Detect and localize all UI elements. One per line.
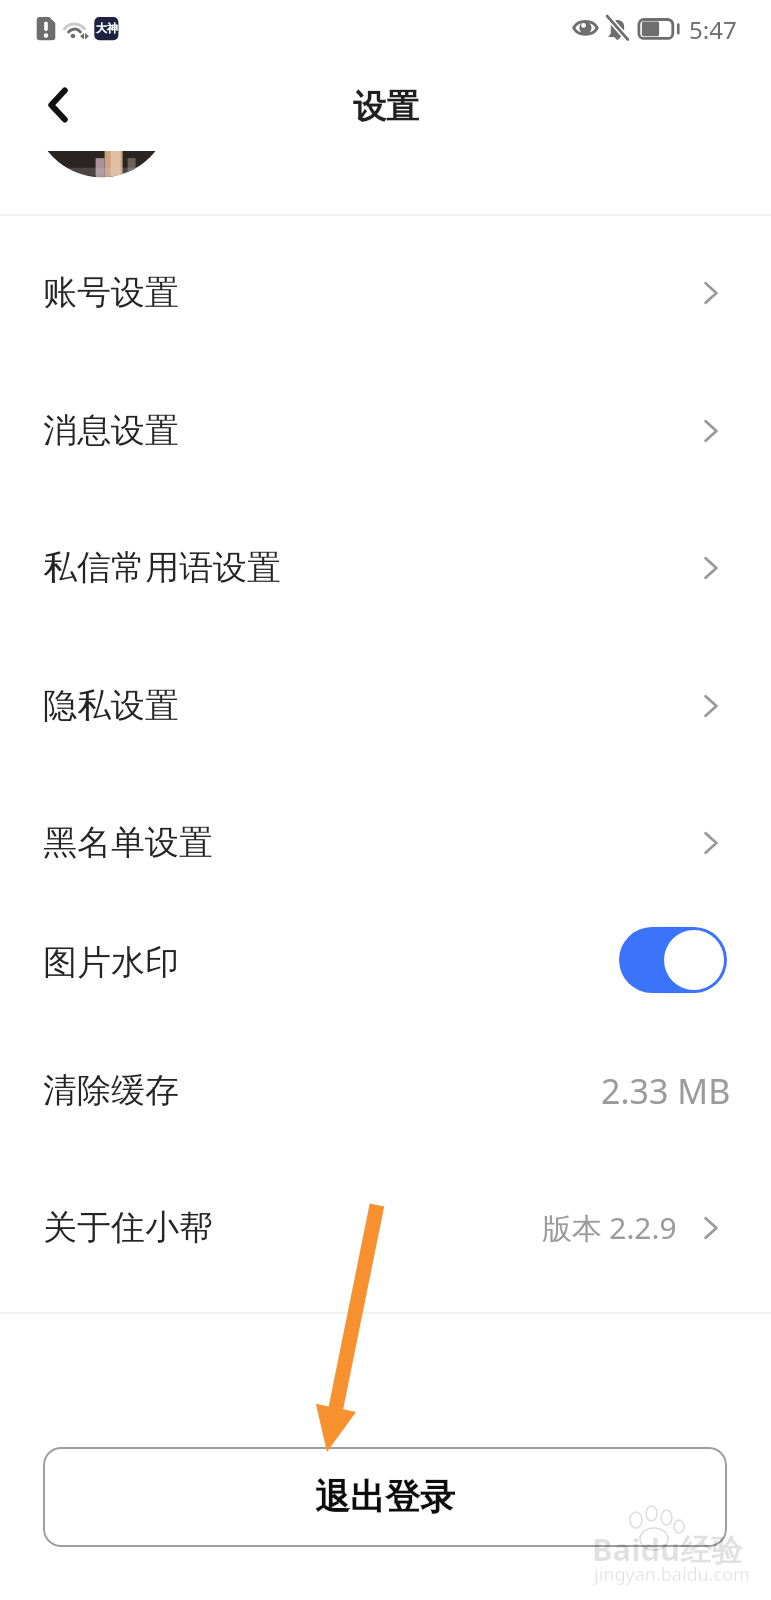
staticText: 账号设置 (43, 271, 179, 314)
button[interactable]: 清除缓存 (0, 1038, 771, 1175)
staticText: Baidu经验 (592, 1528, 743, 1570)
staticText: 私信常用语设置 (43, 546, 281, 589)
staticText: 关于住小帮 (43, 1206, 213, 1249)
button[interactable]: 私信常用语设置 (0, 490, 771, 627)
staticText: 退出登录 (315, 1475, 455, 1519)
button[interactable]: 账号设置 (0, 216, 771, 353)
staticText: 隐私设置 (43, 684, 179, 727)
button[interactable]: 关于住小帮 (0, 1175, 771, 1312)
button[interactable]: 图片水印 (0, 901, 771, 1038)
staticText: 清除缓存 (43, 1069, 179, 1112)
button[interactable]: Back (27, 74, 89, 136)
staticText: 2.33 MB (601, 1068, 731, 1114)
button[interactable]: 黑名单设置 (0, 764, 771, 901)
staticText: 版本 2.2.9 (542, 1207, 677, 1248)
button[interactable]: 隐私设置 (0, 627, 771, 764)
button[interactable]: 消息设置 (0, 353, 771, 490)
staticText: 大神 (96, 21, 118, 35)
staticText: jingyan.baidu.com (594, 1562, 750, 1587)
button[interactable]: 退出登录 (43, 1447, 727, 1547)
button[interactable]: Image watermark toggle (619, 927, 727, 993)
staticText: 图片水印 (43, 941, 179, 984)
staticText: 5:47 (689, 13, 737, 46)
staticText: 黑名单设置 (43, 821, 213, 864)
staticText: 设置 (353, 86, 419, 128)
staticText: 消息设置 (43, 409, 179, 452)
